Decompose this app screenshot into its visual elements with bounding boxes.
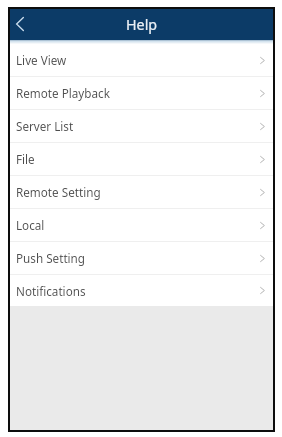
staticText: Server List: [16, 118, 74, 134]
button[interactable]: File: [9, 143, 274, 175]
button[interactable]: Back: [9, 8, 39, 40]
button[interactable]: Push Setting: [9, 242, 274, 274]
staticText: Remote Setting: [16, 184, 101, 200]
staticText: Live View: [16, 52, 67, 68]
button[interactable]: Live View: [9, 44, 274, 76]
staticText: File: [16, 151, 35, 167]
staticText: Help: [126, 15, 158, 34]
staticText: Push Setting: [16, 250, 86, 266]
button[interactable]: Remote Playback: [9, 77, 274, 109]
staticText: Remote Playback: [16, 85, 110, 101]
button[interactable]: Notifications: [9, 275, 274, 306]
button[interactable]: Remote Setting: [9, 176, 274, 208]
button[interactable]: Server List: [9, 110, 274, 142]
button[interactable]: Local: [9, 209, 274, 241]
staticText: Local: [16, 217, 45, 233]
staticText: Notifications: [16, 283, 86, 299]
